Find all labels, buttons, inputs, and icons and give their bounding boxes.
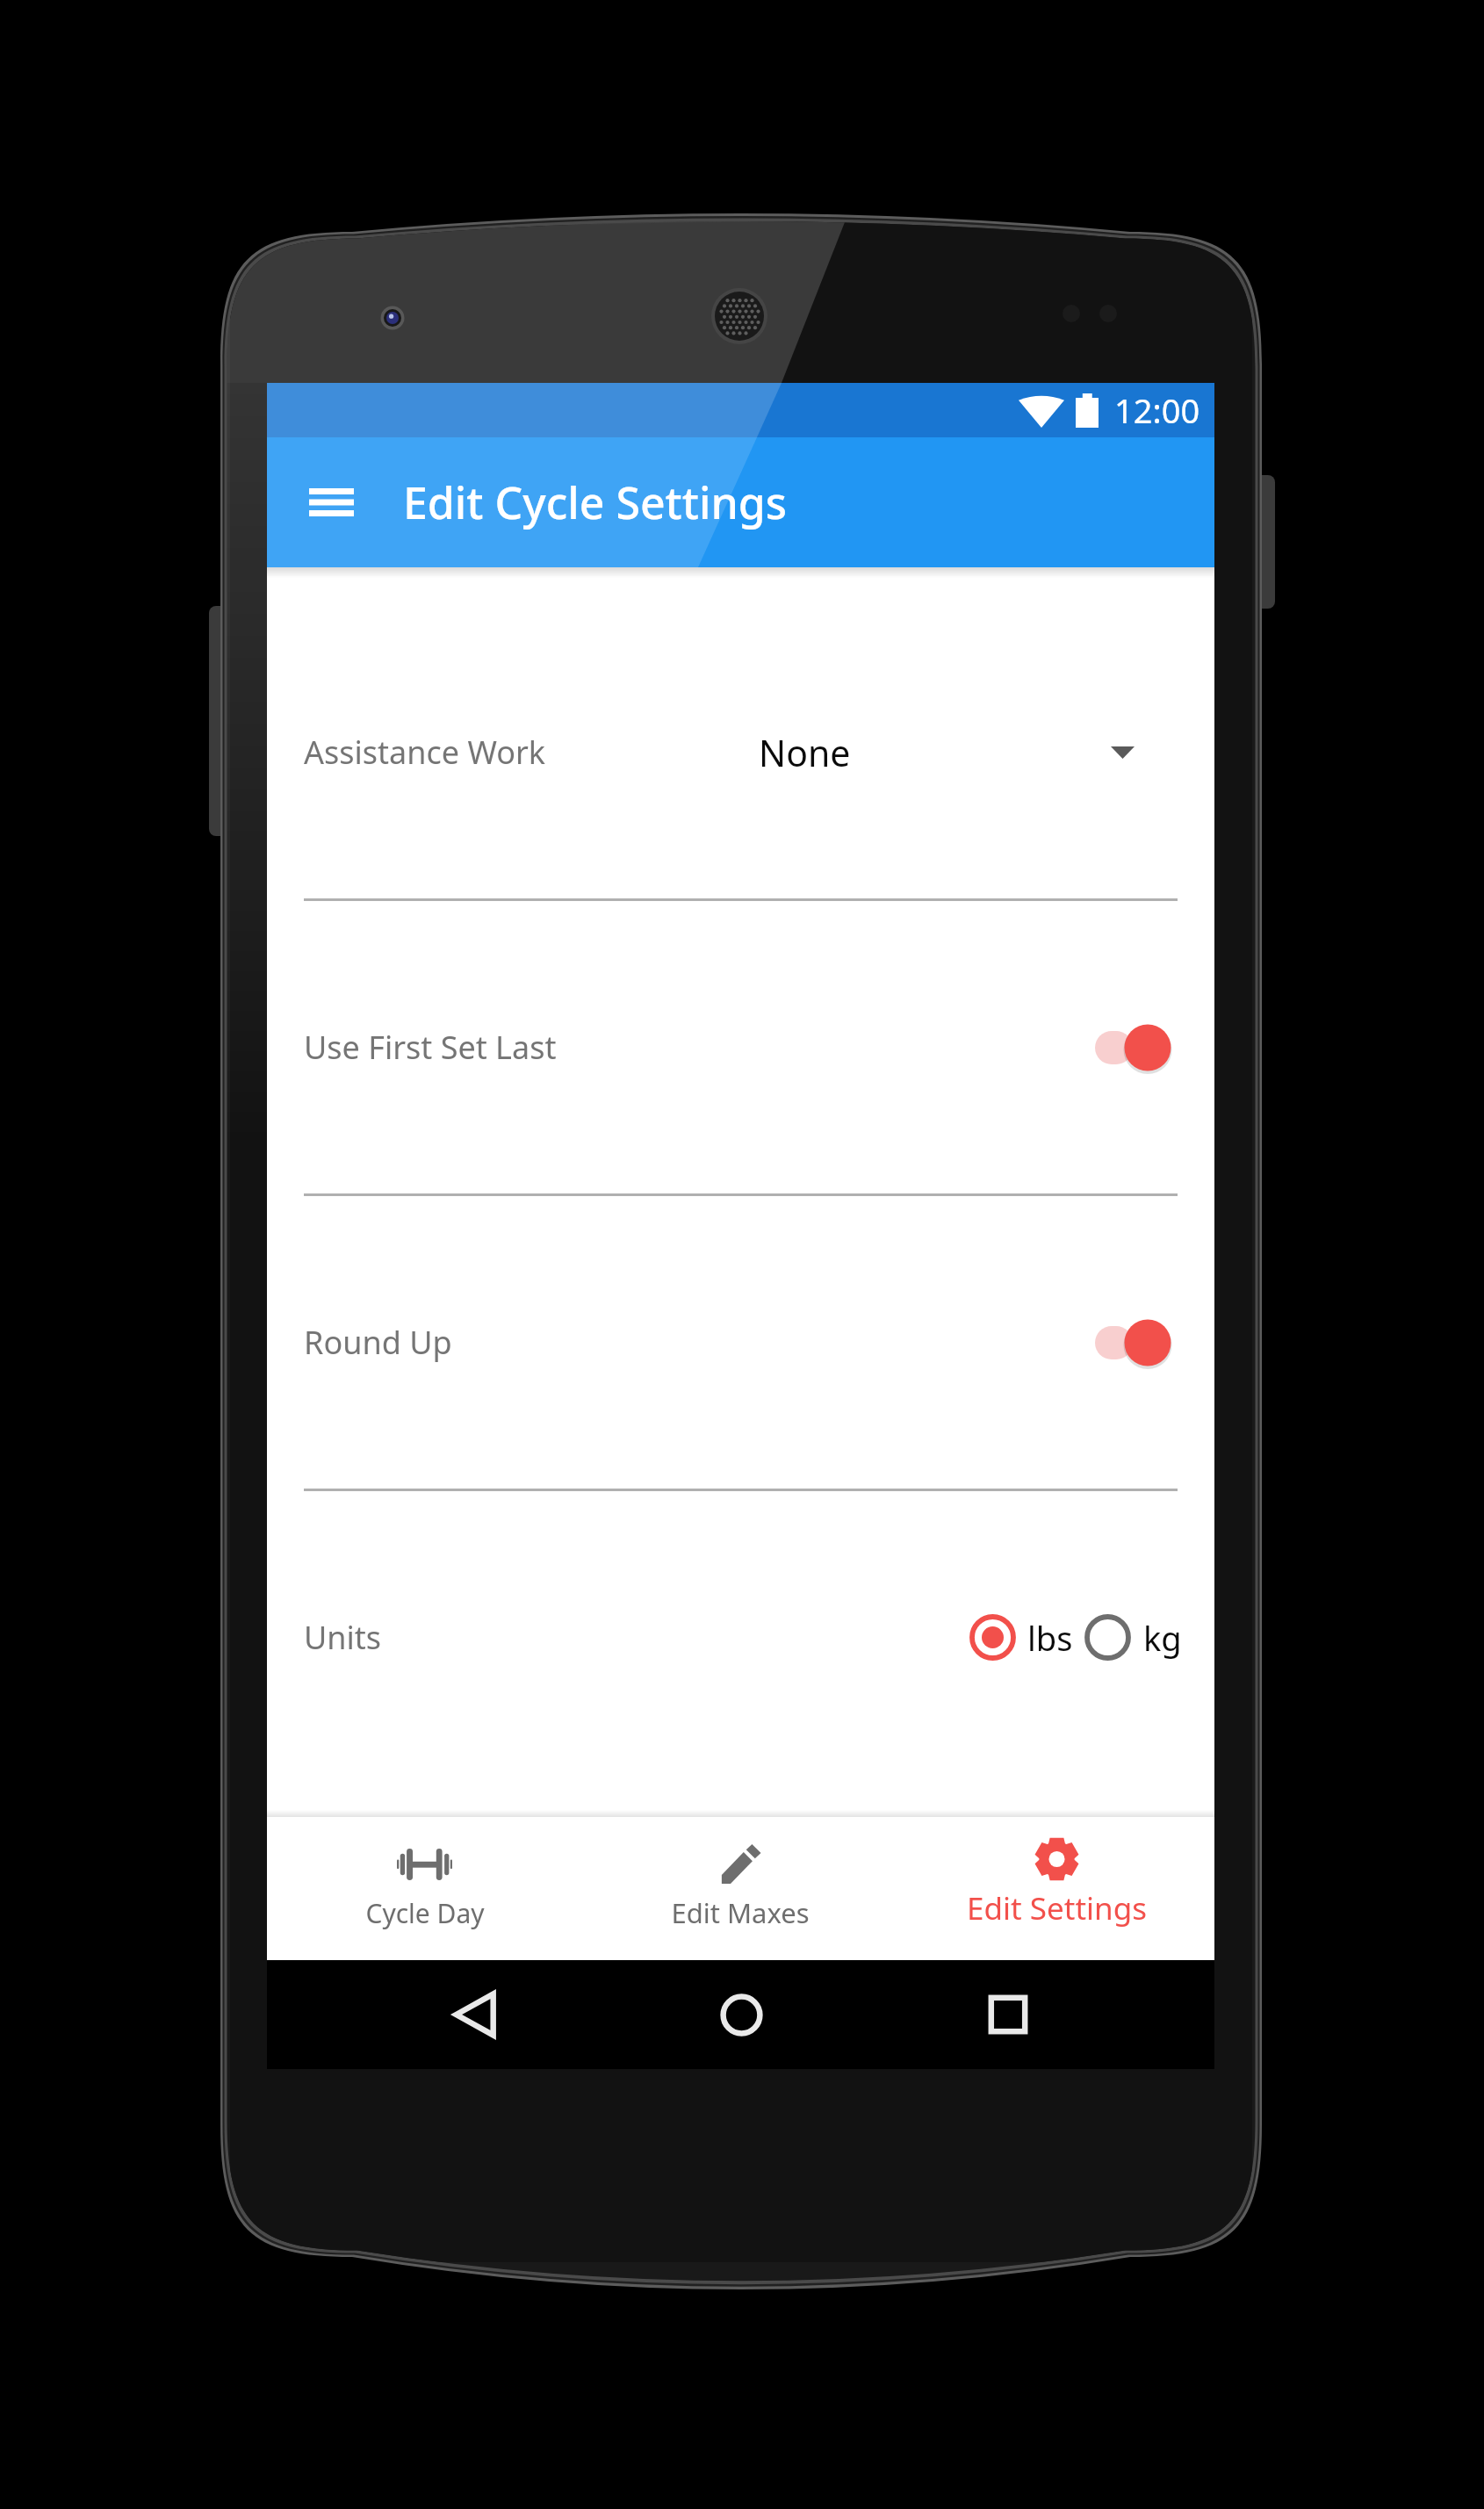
staticText: None — [759, 728, 851, 777]
staticText: Edit Maxes — [671, 1894, 810, 1931]
staticText: Assistance Work — [304, 731, 546, 774]
button[interactable]: Use First Set Last — [267, 901, 1214, 1193]
staticText: Edit Cycle Settings — [403, 472, 788, 532]
button[interactable]: Assistance Work — [267, 606, 1214, 898]
button[interactable]: Cycle Day — [267, 1817, 582, 1960]
button[interactable]: Edit Maxes — [582, 1817, 898, 1960]
button[interactable]: lbs — [969, 1614, 1073, 1661]
button[interactable]: Recent apps — [961, 1967, 1055, 2062]
staticText: 12:00 — [1114, 387, 1200, 433]
button[interactable]: Round Up — [267, 1196, 1214, 1489]
button[interactable]: Toggle setting — [1095, 1316, 1178, 1369]
button[interactable]: Edit Settings — [898, 1817, 1214, 1960]
staticText: Edit Settings — [967, 1887, 1147, 1929]
staticText: Round Up — [304, 1321, 452, 1364]
button[interactable]: Back — [430, 1967, 525, 2062]
staticText: Cycle Day — [365, 1895, 485, 1931]
button[interactable]: kg — [1084, 1614, 1182, 1661]
button[interactable]: Units — [267, 1491, 1214, 1784]
staticText: kg — [1143, 1615, 1182, 1661]
staticText: lbs — [1027, 1615, 1073, 1661]
button[interactable]: Toggle setting — [1095, 1021, 1178, 1074]
button[interactable]: Home — [694, 1967, 789, 2062]
button[interactable]: Open navigation drawer — [295, 466, 367, 538]
staticText: Use First Set Last — [304, 1026, 557, 1069]
staticText: Units — [304, 1616, 382, 1659]
